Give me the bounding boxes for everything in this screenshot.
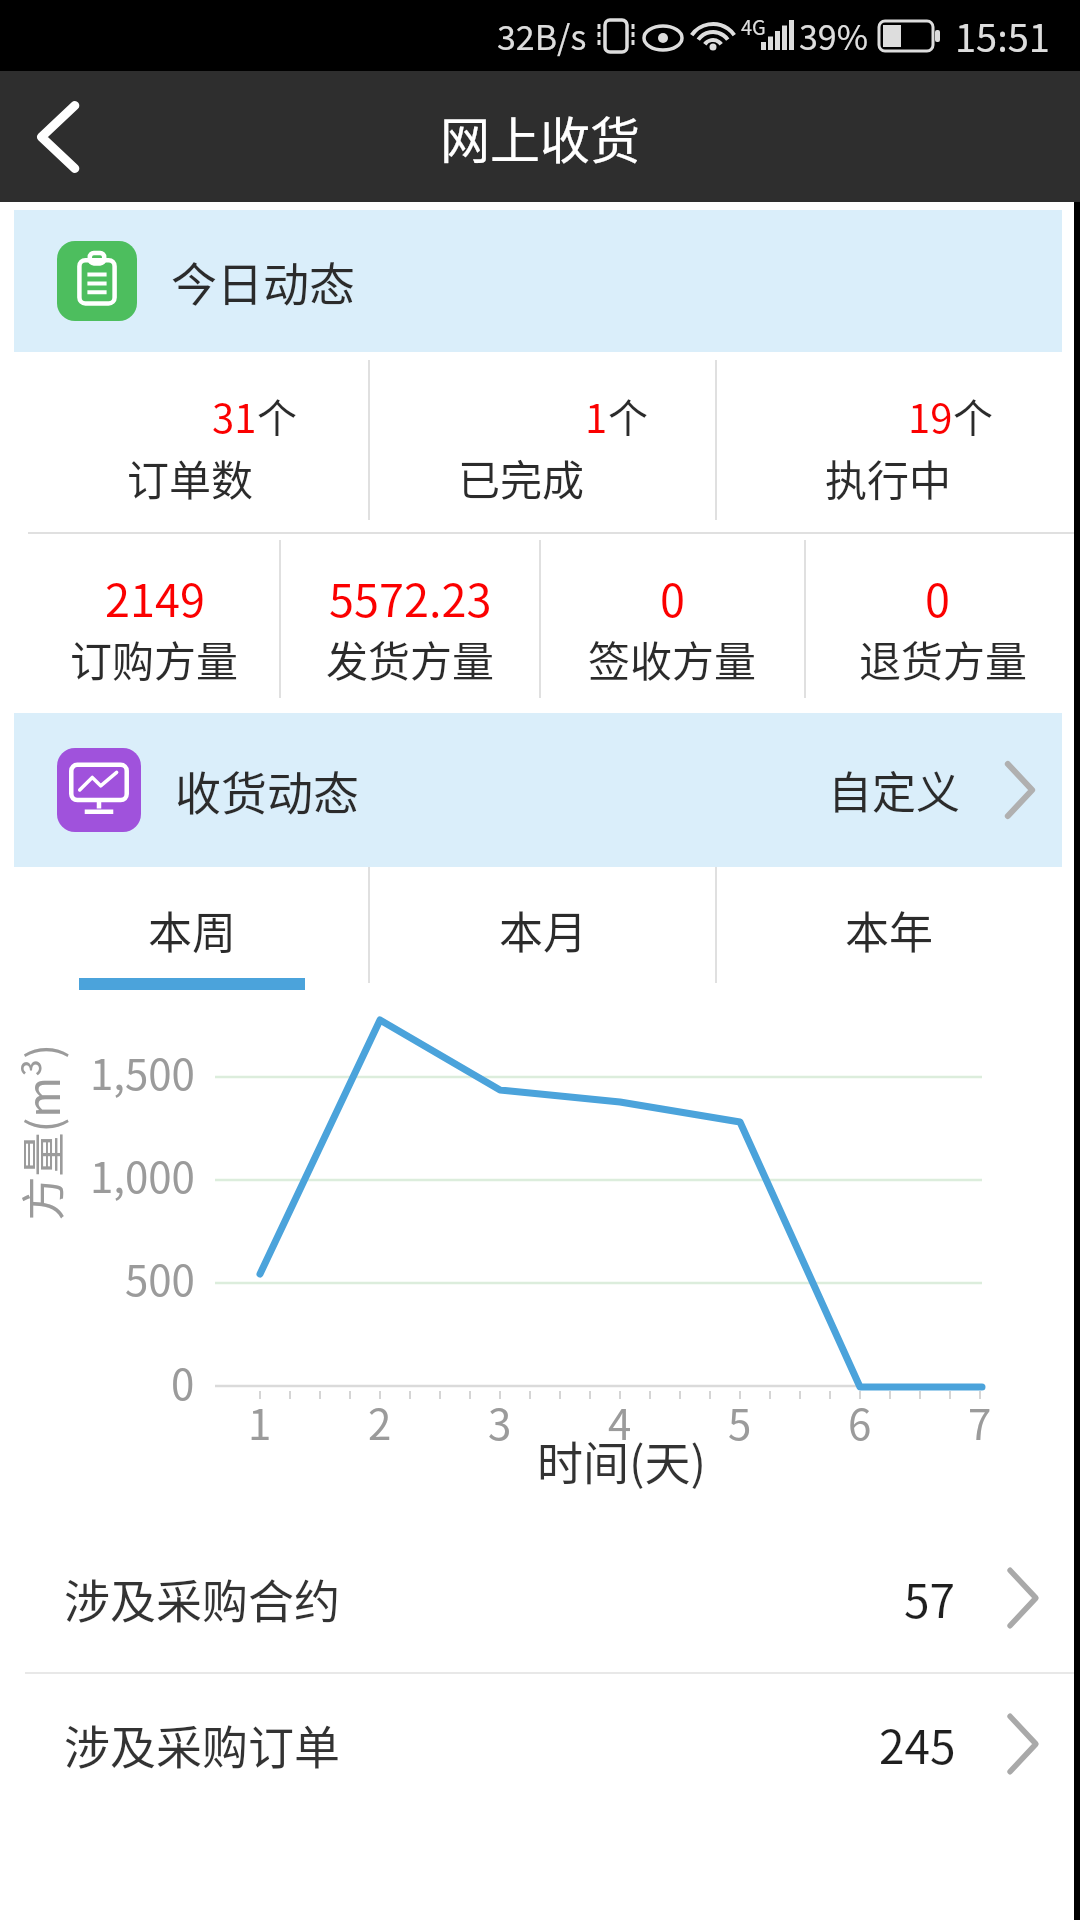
staticText: 31 <box>212 387 257 445</box>
staticText: 57 <box>904 1565 956 1632</box>
staticText: 涉及采购订单 <box>64 1711 340 1778</box>
staticText: 19 <box>908 387 953 445</box>
button[interactable]: 本周 <box>0 867 368 993</box>
staticText: 发货方量 <box>326 628 495 689</box>
staticText: 个 <box>257 387 297 445</box>
staticText: 本月 <box>499 898 587 962</box>
staticText: 1 <box>585 387 608 445</box>
staticText: 时间(天) <box>537 1427 707 1494</box>
button[interactable]: 自定义 <box>828 758 1036 822</box>
staticText: 6 <box>848 1391 872 1452</box>
staticText: 0 <box>171 1351 195 1412</box>
staticText: 签收方量 <box>588 628 757 689</box>
staticText: 执行中 <box>825 447 952 508</box>
staticText: 4G <box>741 12 766 41</box>
button[interactable]: 本月 <box>370 867 715 993</box>
staticText: 退货方量 <box>859 628 1028 689</box>
button[interactable]: 涉及采购订单 <box>0 1674 1080 1834</box>
staticText: 订购方量 <box>70 628 239 689</box>
staticText: 今日动态 <box>171 248 355 315</box>
staticText: 1 <box>248 1391 272 1452</box>
staticText: 已完成 <box>458 447 585 508</box>
staticText: 39% <box>799 11 869 60</box>
staticText: 个 <box>608 387 648 445</box>
staticText: 1,500 <box>90 1041 195 1102</box>
staticText: 自定义 <box>828 758 960 822</box>
staticText: 本周 <box>148 898 236 962</box>
staticText: 2149 <box>105 565 205 630</box>
staticText: 网上收货 <box>440 101 640 173</box>
staticText: 3 <box>488 1391 512 1452</box>
staticText: 涉及采购合约 <box>64 1565 340 1632</box>
staticText: 个 <box>953 387 993 445</box>
staticText: 方量(m³) <box>8 1043 72 1220</box>
staticText: 500 <box>125 1247 195 1308</box>
staticText: 1,000 <box>90 1144 195 1205</box>
staticText: 2 <box>368 1391 392 1452</box>
staticText: 0 <box>925 565 950 630</box>
staticText: 4 <box>608 1391 632 1452</box>
staticText: 本年 <box>845 898 933 962</box>
staticText: 0 <box>660 565 685 630</box>
button[interactable]: 本年 <box>717 867 1080 993</box>
staticText: 订单数 <box>127 447 254 508</box>
staticText: 15:51 <box>955 8 1050 63</box>
staticText: 5 <box>728 1391 752 1452</box>
staticText: 收货动态 <box>175 757 359 824</box>
staticText: 7 <box>968 1391 992 1452</box>
staticText: 245 <box>879 1711 956 1778</box>
staticText: 32B/s <box>497 11 587 60</box>
staticText: 5572.23 <box>329 565 492 630</box>
button[interactable]: 涉及采购合约 <box>0 1500 1080 1672</box>
button[interactable] <box>24 102 94 172</box>
